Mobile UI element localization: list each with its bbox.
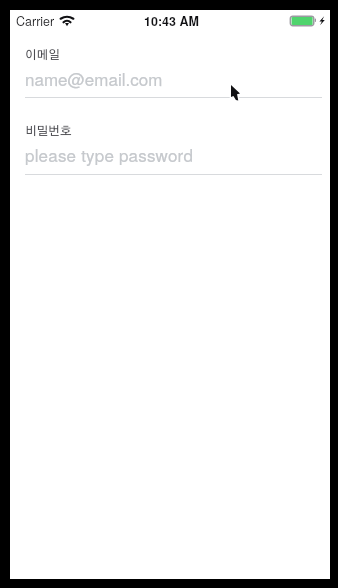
- other: Battery charging: [289, 15, 317, 28]
- other: Wi-Fi signal: [59, 14, 76, 28]
- staticText: please type password: [25, 142, 194, 166]
- button[interactable]: 이메일: [10, 42, 330, 102]
- staticText: name@email.com: [25, 66, 163, 90]
- staticText: Carrier: [16, 12, 55, 30]
- staticText: 이메일: [25, 49, 61, 61]
- button[interactable]: 비밀번호: [10, 118, 330, 179]
- staticText: 10:43 AM: [144, 12, 199, 30]
- staticText: 비밀번호: [25, 125, 72, 137]
